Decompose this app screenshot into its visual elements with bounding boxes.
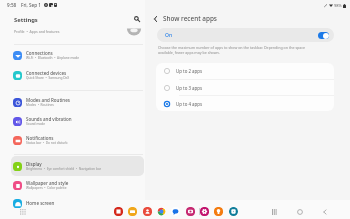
staticText: Sound mode (26, 122, 46, 126)
button[interactable]: Notifications (11, 130, 144, 150)
staticText: Fri, Sep 1 (21, 2, 41, 8)
button[interactable]: Search (131, 13, 143, 25)
staticText: Brightness • Eye comfort shield • Naviga… (26, 167, 101, 171)
button[interactable]: Back (149, 13, 161, 25)
button[interactable]: Home screen (11, 193, 144, 213)
button[interactable]: Up to 2 apps (156, 63, 334, 79)
button[interactable]: Home (294, 206, 306, 218)
staticText: Wi-Fi • Bluetooth • Airplane mode (26, 56, 80, 60)
staticText: Wallpaper and style (26, 180, 69, 186)
button[interactable]: BULB (214, 207, 223, 216)
staticText: 98% (334, 3, 342, 8)
staticText: Wallpapers • Color palette (26, 186, 67, 190)
button[interactable]: FILES (128, 207, 137, 216)
staticText: Up to 4 apps (176, 101, 203, 107)
button[interactable]: Up to 3 apps (156, 80, 334, 95)
staticText: 9:58 (7, 2, 17, 8)
button[interactable]: On (157, 28, 334, 42)
button[interactable]: Sounds and vibration (11, 111, 144, 131)
staticText: Display (26, 161, 42, 167)
button[interactable]: Recent apps (269, 206, 281, 218)
staticText: Status bar • Do not disturb (26, 141, 68, 145)
button[interactable]: Connected devices (11, 65, 144, 85)
staticText: Profile • Apps and features (14, 29, 60, 34)
button[interactable]: SETTINGS (200, 207, 209, 216)
staticText: Choose the maximum number of apps to sho… (158, 45, 306, 55)
button[interactable]: CALC (229, 207, 238, 216)
staticText: Home screen (26, 200, 55, 206)
staticText: Up to 2 apps (176, 68, 203, 74)
button[interactable]: MESSAGES (171, 207, 180, 216)
button[interactable]: CHROME (157, 207, 166, 216)
button[interactable]: Back (319, 206, 331, 218)
button[interactable]: Up to 4 apps (156, 96, 334, 111)
button[interactable]: NOTES (114, 207, 123, 216)
staticText: Sounds and vibration (26, 116, 72, 122)
button[interactable]: Modes and Routines (11, 92, 144, 112)
staticText: Modes and Routines (26, 97, 70, 103)
staticText: Up to 3 apps (176, 85, 203, 91)
staticText: Notifications (26, 135, 54, 141)
staticText: Connected devices (26, 70, 67, 76)
button[interactable]: Connections (11, 45, 144, 65)
button[interactable]: CAMERA (186, 207, 195, 216)
staticText: Connections (26, 50, 53, 56)
staticText: Quick Share • Samsung DeX (26, 76, 70, 80)
button[interactable]: Display (11, 156, 144, 176)
staticText: On (165, 32, 173, 39)
staticText: Modes • Routines (26, 103, 54, 107)
button[interactable]: Profile (126, 27, 142, 36)
staticText: Show recent apps (163, 14, 217, 23)
staticText: Settings (14, 16, 38, 24)
button[interactable]: CONTACTS (143, 207, 152, 216)
button[interactable]: Wallpaper and style (11, 175, 144, 195)
